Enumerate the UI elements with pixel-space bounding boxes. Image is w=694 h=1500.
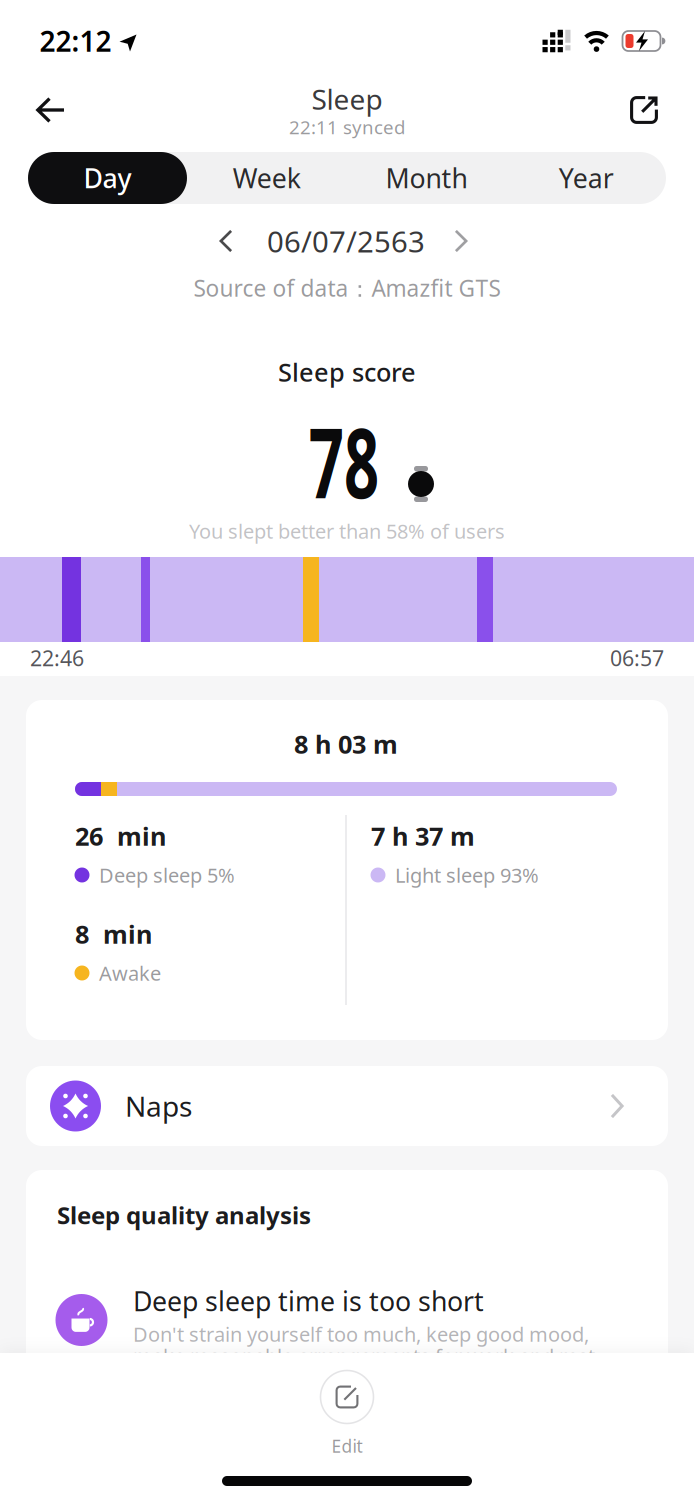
staticText: 22:11 synced — [289, 115, 405, 139]
staticText: You slept better than 58% of users — [189, 518, 505, 544]
staticText: Sleep quality analysis — [57, 1199, 311, 1231]
button[interactable]: Week — [187, 152, 347, 204]
staticText: 26 min — [75, 819, 166, 853]
staticText: Week — [233, 160, 301, 196]
staticText: Awake — [99, 960, 161, 986]
staticText: 8 min — [75, 917, 152, 951]
staticText: 22:46 — [30, 644, 84, 672]
button[interactable]: Next day — [444, 219, 477, 262]
staticText: Day — [83, 160, 131, 196]
staticText: Don't strain yourself too much, keep goo… — [133, 1321, 589, 1347]
button[interactable]: Year — [507, 152, 666, 204]
staticText: Light sleep 93% — [395, 862, 539, 888]
button[interactable]: Edit — [320, 1370, 373, 1457]
staticText: Source of data：Amazfit GTS — [193, 273, 500, 303]
button[interactable]: Day — [28, 152, 187, 204]
button[interactable]: Previous day — [209, 219, 242, 262]
staticText: 78 — [289, 397, 399, 525]
staticText: Sleep score — [278, 355, 416, 389]
button[interactable]: Naps — [26, 1066, 668, 1146]
staticText: Edit — [331, 1434, 362, 1457]
staticText: 7 h 37 m — [371, 819, 475, 853]
staticText: Deep sleep 5% — [99, 862, 235, 888]
staticText: 22:12 — [39, 22, 111, 60]
staticText: Month — [386, 160, 468, 196]
staticText: Deep sleep time is too short — [133, 1283, 484, 1319]
staticText: Year — [559, 160, 614, 196]
button[interactable]: Back — [25, 86, 75, 134]
staticText: 06:57 — [610, 644, 664, 672]
staticText: Naps — [125, 1087, 192, 1125]
staticText: make reasonable arrangements for work an… — [133, 1343, 600, 1369]
button[interactable]: Month — [347, 152, 507, 204]
staticText: Sleep — [311, 80, 382, 118]
button[interactable]: Share — [619, 85, 669, 135]
staticText: 06/07/2563 — [267, 221, 425, 260]
staticText: 8 h 03 m — [294, 727, 398, 761]
